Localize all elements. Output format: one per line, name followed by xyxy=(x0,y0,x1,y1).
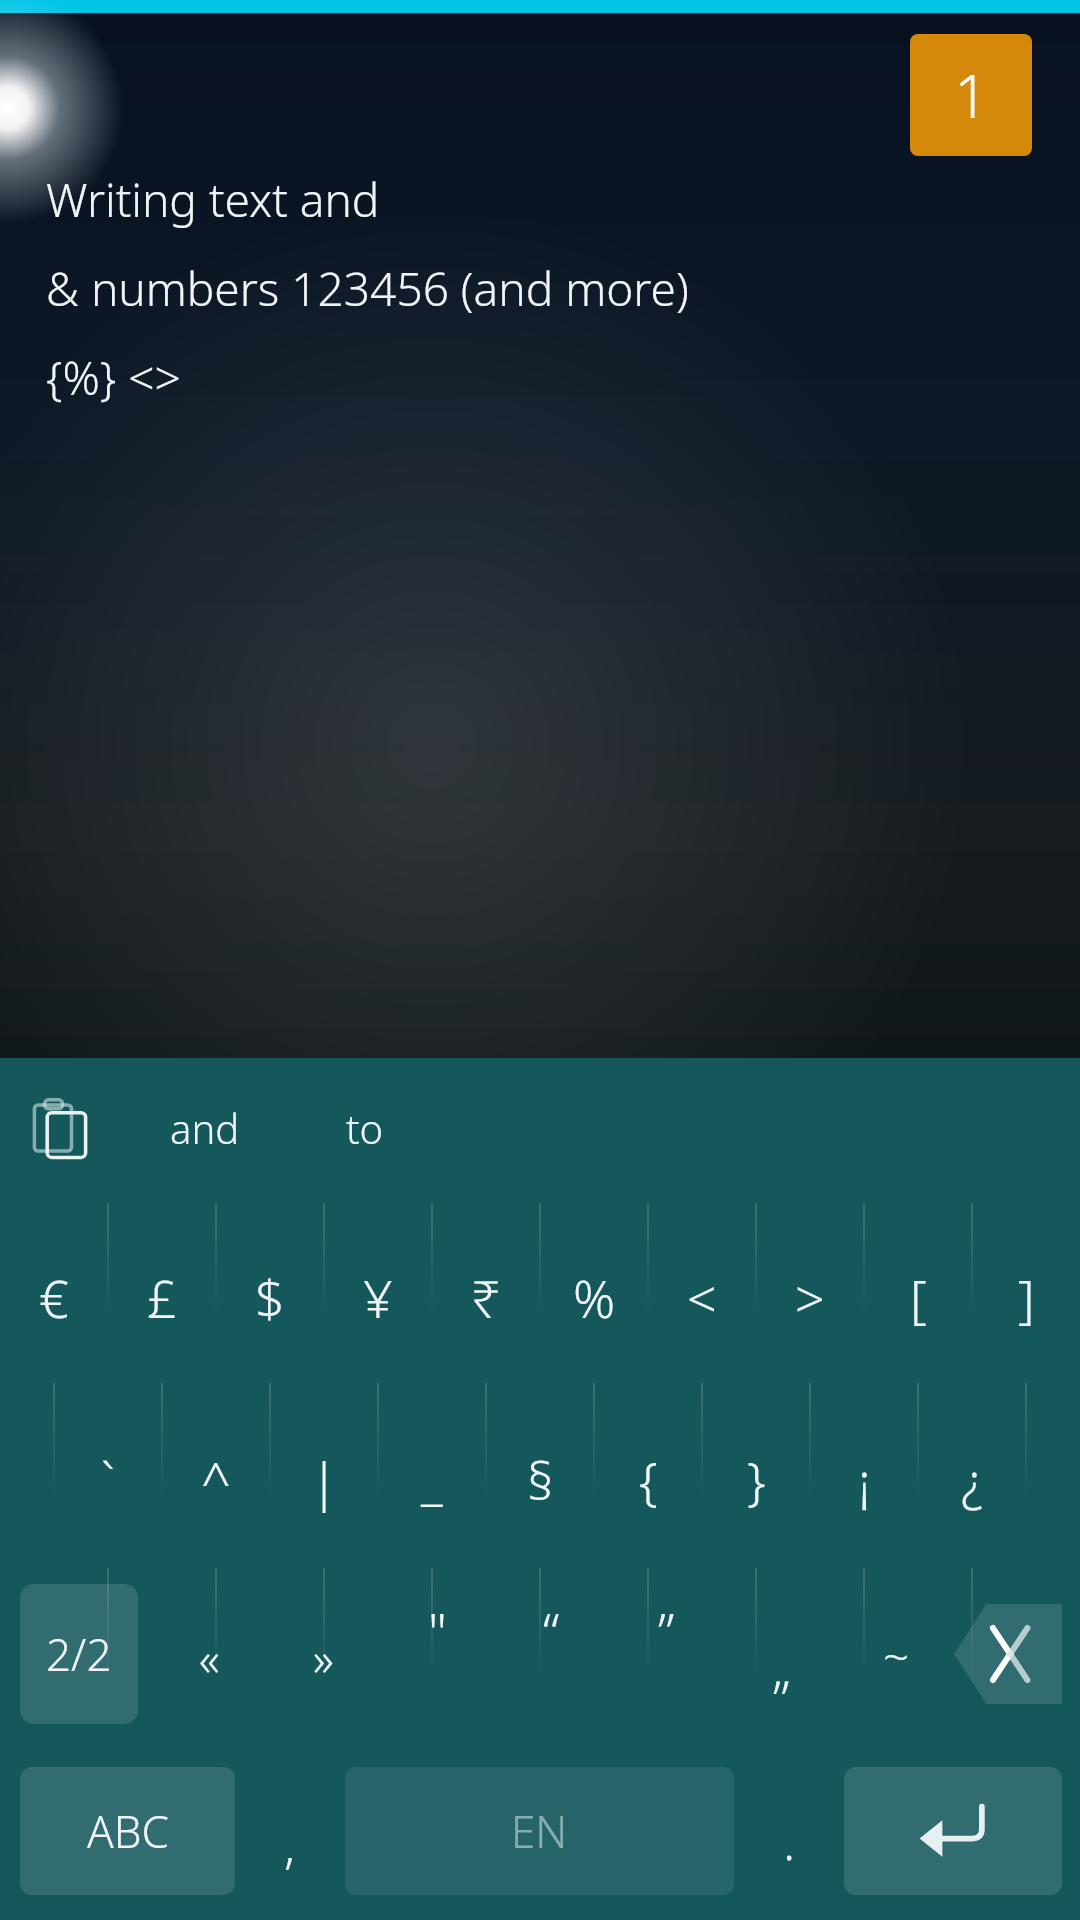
button[interactable]: [ xyxy=(864,1198,972,1380)
button[interactable]: EN xyxy=(345,1767,734,1895)
button[interactable]: { xyxy=(594,1380,702,1566)
button[interactable]: , xyxy=(235,1742,345,1920)
staticText: » xyxy=(313,1627,334,1690)
button[interactable]: » xyxy=(266,1566,380,1742)
staticText: and xyxy=(170,1101,240,1155)
button[interactable]: § xyxy=(486,1380,594,1566)
button[interactable]: } xyxy=(702,1380,810,1566)
staticText: . xyxy=(783,1807,796,1875)
button[interactable]: Backspace xyxy=(954,1604,1062,1704)
staticText: , xyxy=(284,1811,296,1879)
button[interactable]: | xyxy=(270,1380,378,1566)
staticText: $ xyxy=(255,1262,285,1333)
staticText: ~ xyxy=(883,1625,910,1688)
staticText: % xyxy=(573,1262,616,1333)
button[interactable]: " xyxy=(380,1566,494,1742)
staticText: } xyxy=(747,1444,766,1515)
button[interactable]: ¥ xyxy=(324,1198,432,1380)
staticText: ¿ xyxy=(961,1444,983,1515)
button[interactable]: £ xyxy=(108,1198,216,1380)
staticText: ” xyxy=(658,1595,675,1666)
staticText: § xyxy=(527,1444,554,1515)
staticText: £ xyxy=(147,1262,177,1333)
staticText: Writing text and xyxy=(46,168,380,231)
staticText: « xyxy=(199,1627,220,1690)
staticText: 2/2 xyxy=(46,1624,112,1684)
button[interactable]: ¿ xyxy=(918,1380,1026,1566)
button[interactable]: $ xyxy=(216,1198,324,1380)
staticText: € xyxy=(39,1262,69,1333)
staticText: { xyxy=(639,1444,658,1515)
button[interactable]: > xyxy=(756,1198,864,1380)
staticText: “ xyxy=(543,1595,560,1666)
staticText: _ xyxy=(421,1444,443,1515)
button[interactable]: „ xyxy=(724,1566,839,1742)
staticText: to xyxy=(346,1101,384,1155)
button[interactable]: Clipboard xyxy=(0,1058,120,1198)
button[interactable]: and xyxy=(120,1058,290,1198)
staticText: | xyxy=(310,1444,339,1515)
staticText: ^ xyxy=(201,1444,231,1515)
button[interactable]: to xyxy=(290,1058,440,1198)
button[interactable]: 1 xyxy=(910,34,1032,156)
staticText: & numbers 123456 (and more) xyxy=(46,257,689,320)
button[interactable]: _ xyxy=(378,1380,486,1566)
button[interactable]: « xyxy=(152,1566,266,1742)
staticText: [ xyxy=(910,1262,927,1333)
staticText: ABC xyxy=(87,1801,169,1861)
staticText: ₹ xyxy=(471,1262,501,1333)
button[interactable]: € xyxy=(0,1198,108,1380)
staticText: EN xyxy=(511,1801,568,1861)
staticText: ¥ xyxy=(363,1262,393,1333)
button[interactable]: ₹ xyxy=(432,1198,540,1380)
staticText: 1 xyxy=(954,54,989,136)
button[interactable]: ¡ xyxy=(810,1380,918,1566)
staticText: < xyxy=(687,1262,717,1333)
button[interactable]: ~ xyxy=(839,1566,954,1742)
button[interactable]: Enter xyxy=(844,1767,1062,1895)
button[interactable]: ” xyxy=(609,1566,724,1742)
button[interactable]: “ xyxy=(494,1566,609,1742)
staticText: " xyxy=(428,1595,447,1666)
staticText: ¡ xyxy=(858,1444,871,1515)
staticText: ] xyxy=(1018,1262,1035,1333)
button[interactable]: ^ xyxy=(162,1380,270,1566)
staticText: > xyxy=(795,1262,825,1333)
button[interactable]: ABC xyxy=(20,1767,235,1895)
button[interactable]: < xyxy=(648,1198,756,1380)
button[interactable]: ` xyxy=(54,1380,162,1566)
staticText: ` xyxy=(101,1444,115,1515)
button[interactable]: ] xyxy=(972,1198,1080,1380)
staticText: {%} <> xyxy=(46,346,181,409)
button[interactable]: 2/2 xyxy=(20,1584,138,1724)
button[interactable]: % xyxy=(540,1198,648,1380)
staticText: „ xyxy=(772,1631,792,1702)
button[interactable]: . xyxy=(734,1742,844,1920)
